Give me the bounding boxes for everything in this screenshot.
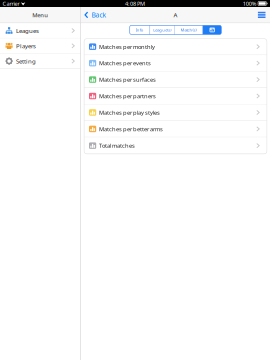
- staticText: Matches per partners: [99, 92, 156, 100]
- staticText: Matches per monthly: [99, 43, 155, 51]
- staticText: Matches per events: [99, 59, 151, 67]
- button[interactable]: Matches per play styles: [84, 104, 267, 121]
- staticText: 4:08 PM: [125, 0, 145, 7]
- button[interactable]: League(s): [150, 25, 174, 34]
- button[interactable]: Matches per better arms: [84, 121, 267, 137]
- staticText: Carrier: [2, 0, 19, 7]
- staticText: Info: [136, 27, 144, 33]
- staticText: Matches per better arms: [99, 125, 163, 133]
- button[interactable]: List options: [253, 7, 270, 23]
- button[interactable]: Info: [130, 25, 150, 34]
- button[interactable]: Back: [81, 7, 109, 23]
- button[interactable]: Menu: [0, 7, 80, 23]
- staticText: Match(s): [181, 27, 197, 33]
- button[interactable]: Players: [0, 38, 80, 54]
- button[interactable]: Charts: [203, 25, 221, 34]
- staticText: Setting: [16, 57, 36, 65]
- staticText: Players: [16, 42, 36, 50]
- staticText: Matches per play styles: [99, 109, 160, 116]
- staticText: Menu: [32, 11, 48, 19]
- staticText: 100%: [243, 0, 257, 7]
- staticText: Total matches: [99, 142, 135, 149]
- button[interactable]: Matches per events: [84, 55, 267, 71]
- staticText: League(s): [153, 27, 171, 33]
- staticText: A: [173, 11, 177, 19]
- staticText: Back: [91, 10, 106, 19]
- staticText: Leagues: [16, 26, 39, 35]
- button[interactable]: Matches per monthly: [84, 39, 267, 55]
- button[interactable]: Total matches: [84, 137, 267, 154]
- button[interactable]: Matches per surfaces: [84, 72, 267, 88]
- button[interactable]: Matches per partners: [84, 88, 267, 104]
- button[interactable]: Setting: [0, 54, 80, 69]
- button[interactable]: Leagues: [0, 23, 80, 38]
- button[interactable]: Match(s): [175, 25, 203, 34]
- staticText: Matches per surfaces: [99, 76, 156, 83]
